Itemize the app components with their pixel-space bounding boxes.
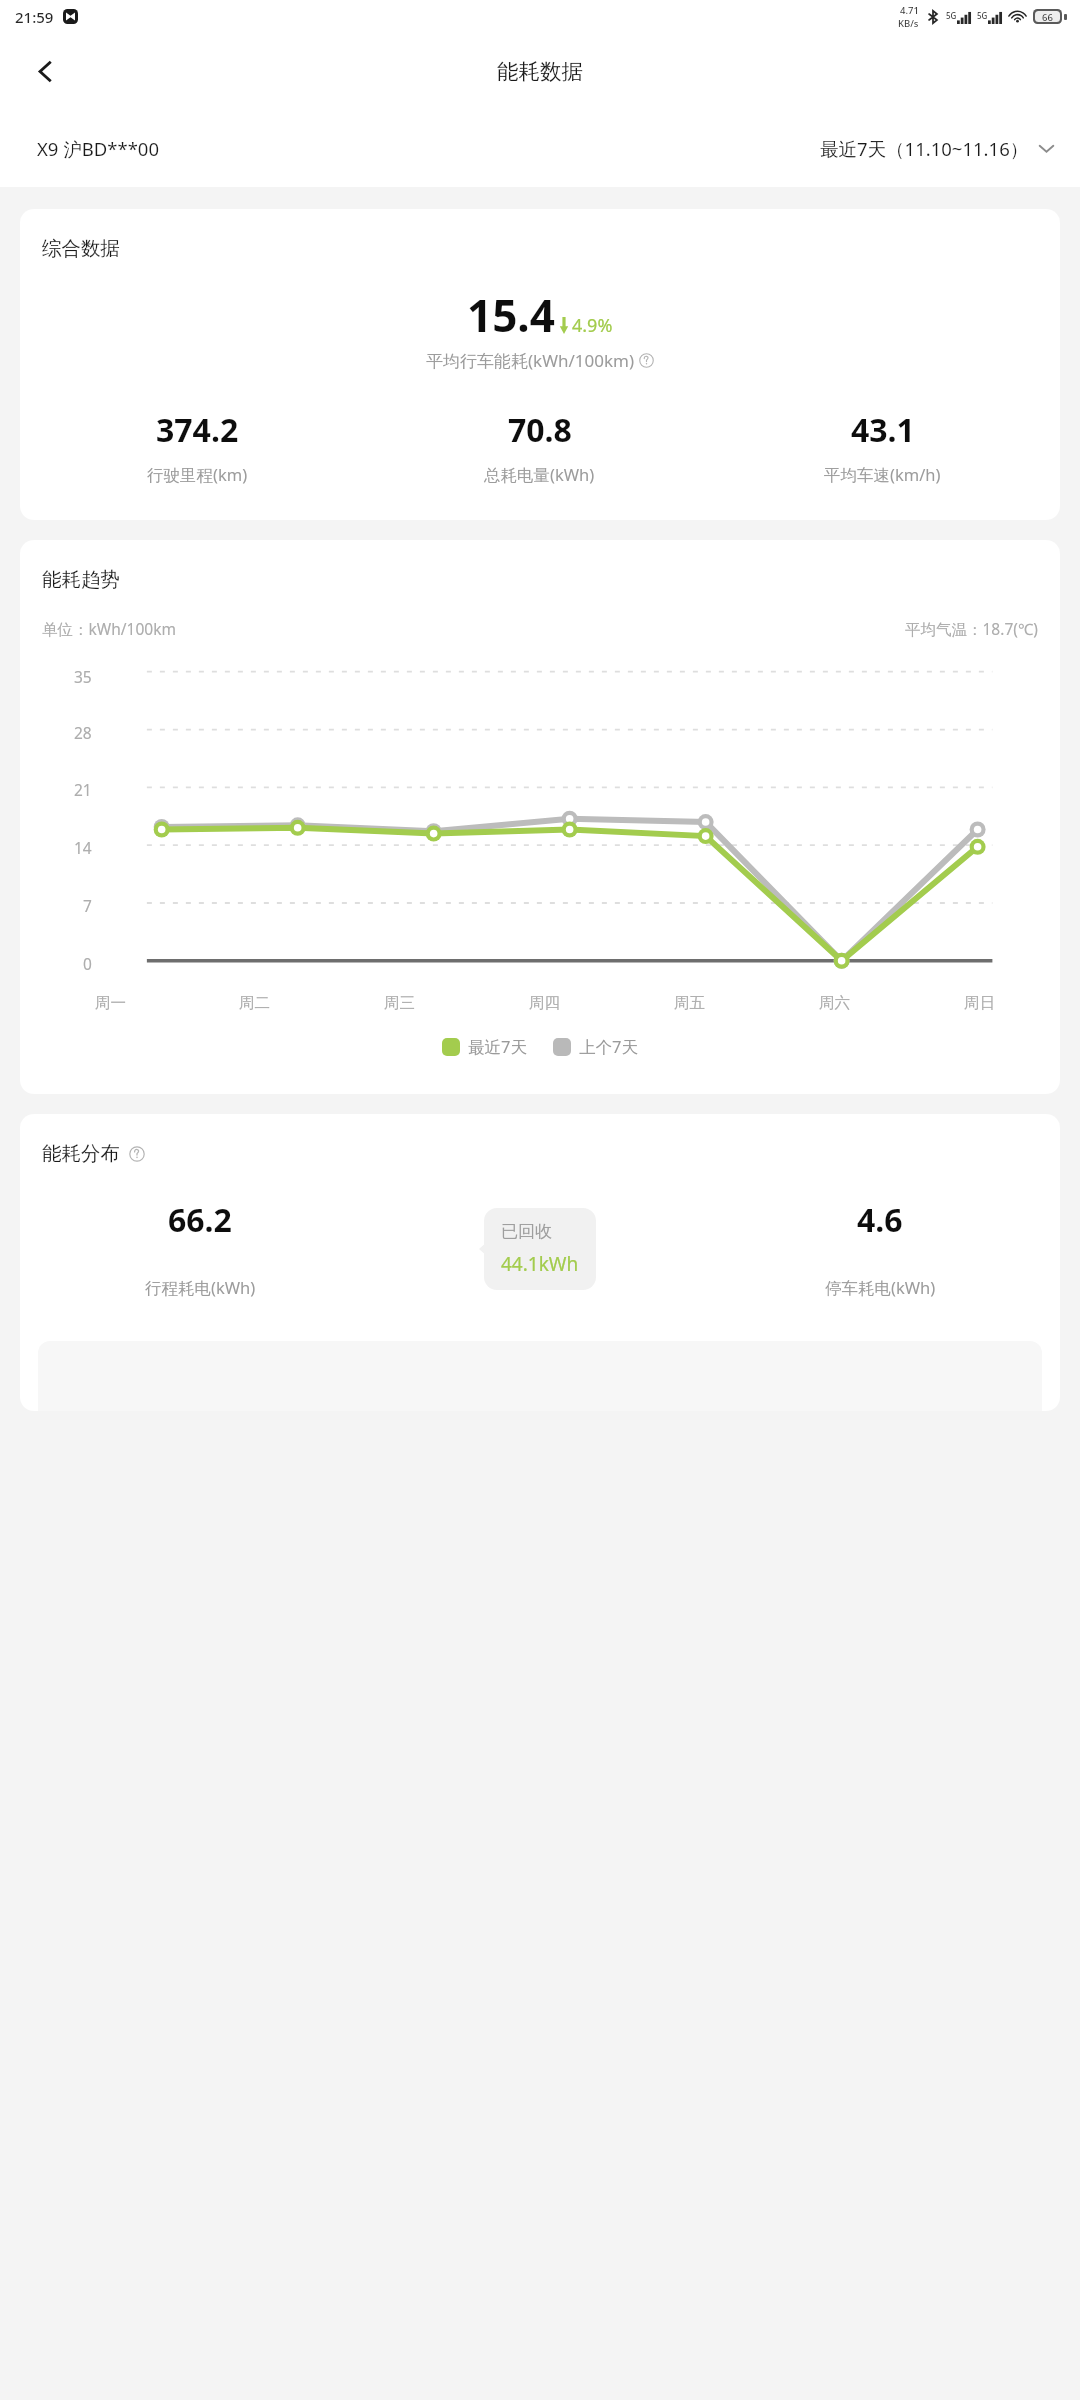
button[interactable]: Back — [18, 44, 72, 98]
staticText: 总耗电量(kWh) — [484, 463, 595, 486]
staticText: 能耗趋势 — [42, 567, 120, 592]
staticText: X9 沪BD***00 — [37, 136, 160, 161]
staticText: 最近7天（11.10~11.16） — [820, 136, 1029, 161]
staticText: 4.6 — [857, 1198, 903, 1242]
staticText: 43.1 — [851, 408, 915, 452]
button[interactable]: 最近7天 — [442, 1035, 527, 1058]
staticText: 上个7天 — [579, 1035, 638, 1058]
staticText: 最近7天 — [468, 1035, 527, 1058]
staticText: 35 — [74, 666, 92, 685]
staticText: 周五 — [674, 993, 705, 1013]
staticText: 能耗分布 — [42, 1141, 120, 1166]
staticText: 21:59 — [15, 7, 54, 27]
button[interactable]: 上个7天 — [553, 1035, 638, 1058]
staticText: 21 — [74, 779, 92, 800]
staticText: 70.8 — [508, 408, 572, 452]
staticText: 平均行车能耗(kWh/100km) — [426, 349, 635, 372]
staticText: 平均车速(km/h) — [824, 463, 941, 486]
staticText: 44.1kWh — [501, 1251, 579, 1277]
staticText: 7 — [83, 895, 92, 916]
staticText: 15.4 — [467, 285, 555, 345]
staticText: 周四 — [529, 993, 560, 1013]
staticText: 行程耗电(kWh) — [145, 1276, 256, 1299]
staticText: 周日 — [964, 993, 995, 1013]
staticText: 周六 — [819, 993, 850, 1013]
staticText: 28 — [74, 722, 92, 743]
staticText: 能耗数据 — [497, 58, 583, 85]
staticText: 周二 — [239, 993, 270, 1013]
staticText: 5G — [946, 10, 957, 21]
staticText: 行驶里程(km) — [147, 463, 248, 486]
staticText: 综合数据 — [42, 236, 120, 261]
button[interactable]: 最近7天（11.10~11.16） — [820, 136, 1056, 161]
staticText: 周一 — [95, 993, 126, 1013]
staticText: 66.2 — [168, 1198, 232, 1242]
staticText: 停车耗电(kWh) — [825, 1276, 936, 1299]
staticText: 单位：kWh/100km — [42, 618, 176, 639]
staticText: 14 — [74, 837, 92, 858]
staticText: 平均气温：18.7(℃) — [905, 618, 1038, 639]
staticText: KB/s — [898, 17, 919, 30]
staticText: 374.2 — [156, 408, 239, 452]
staticText: 周三 — [384, 993, 415, 1013]
staticText: 4.9% — [572, 313, 613, 338]
staticText: 5G — [977, 10, 988, 21]
staticText: 4.71 — [900, 4, 919, 17]
staticText: 0 — [83, 953, 92, 974]
staticText: 已回收 — [501, 1221, 552, 1242]
staticText: 66 — [1042, 11, 1053, 22]
